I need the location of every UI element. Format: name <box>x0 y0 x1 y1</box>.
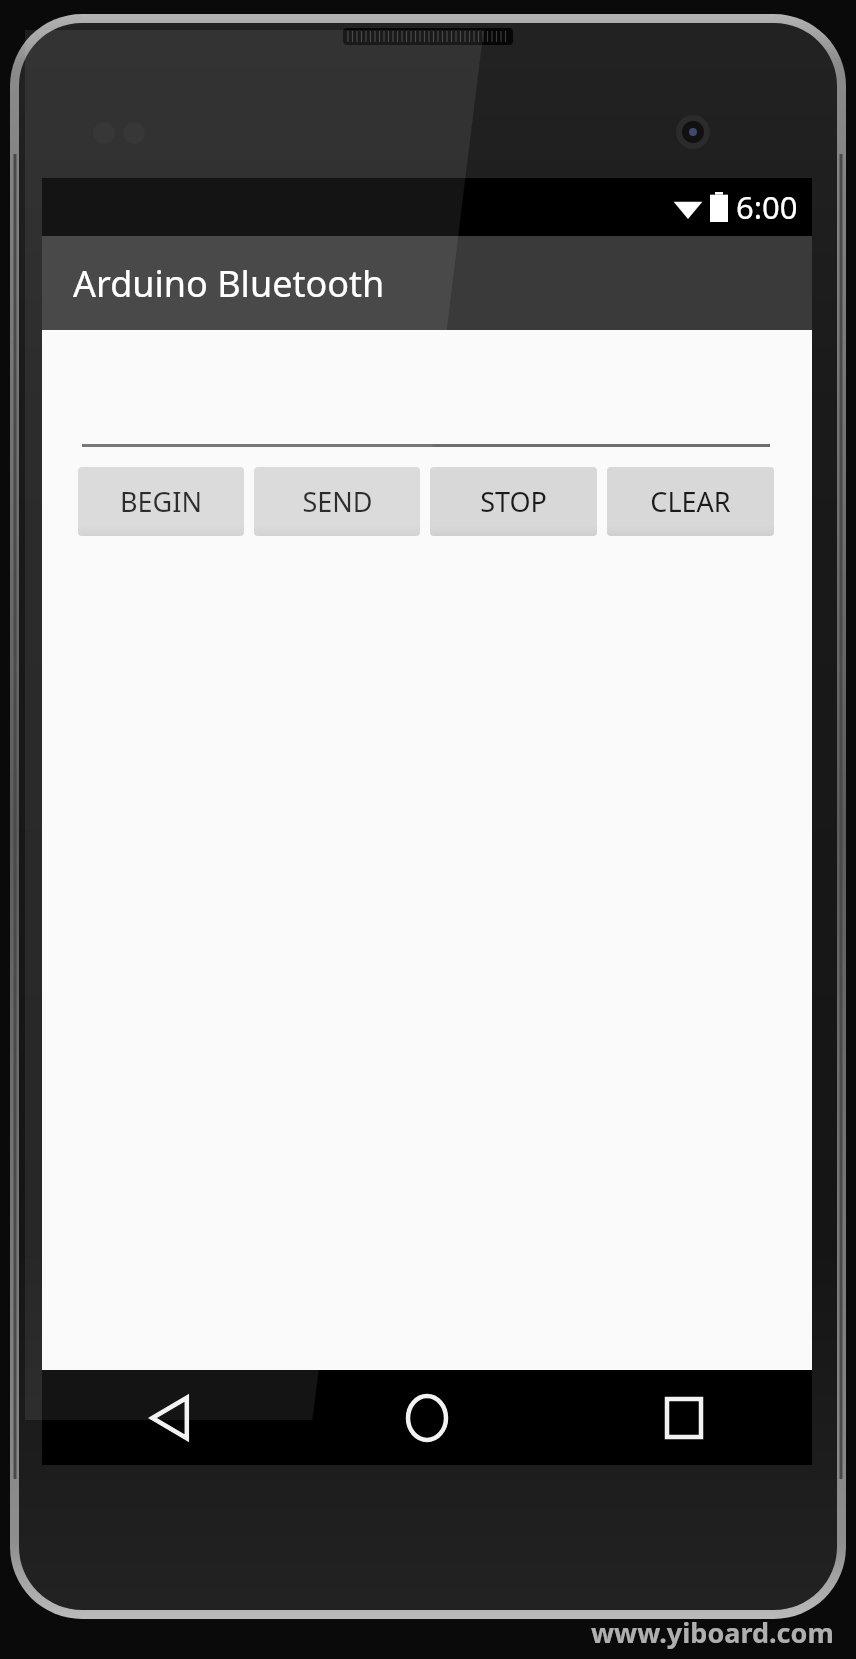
staticText: SEND <box>302 483 373 520</box>
button[interactable]: Recent apps <box>555 1370 812 1465</box>
staticText: Arduino Bluetooth <box>73 259 385 308</box>
button[interactable]: Back <box>42 1370 298 1465</box>
button[interactable]: CLEAR <box>607 467 774 536</box>
button[interactable]: SEND <box>254 467 420 536</box>
button[interactable]: BEGIN <box>78 467 244 536</box>
staticText: STOP <box>480 483 547 520</box>
staticText: CLEAR <box>650 483 731 520</box>
button[interactable]: STOP <box>430 467 597 536</box>
staticText: 6:00 <box>736 186 798 228</box>
button[interactable]: Home <box>298 1370 555 1465</box>
staticText: www.yiboard.com <box>591 1614 834 1651</box>
staticText: BEGIN <box>120 483 202 520</box>
